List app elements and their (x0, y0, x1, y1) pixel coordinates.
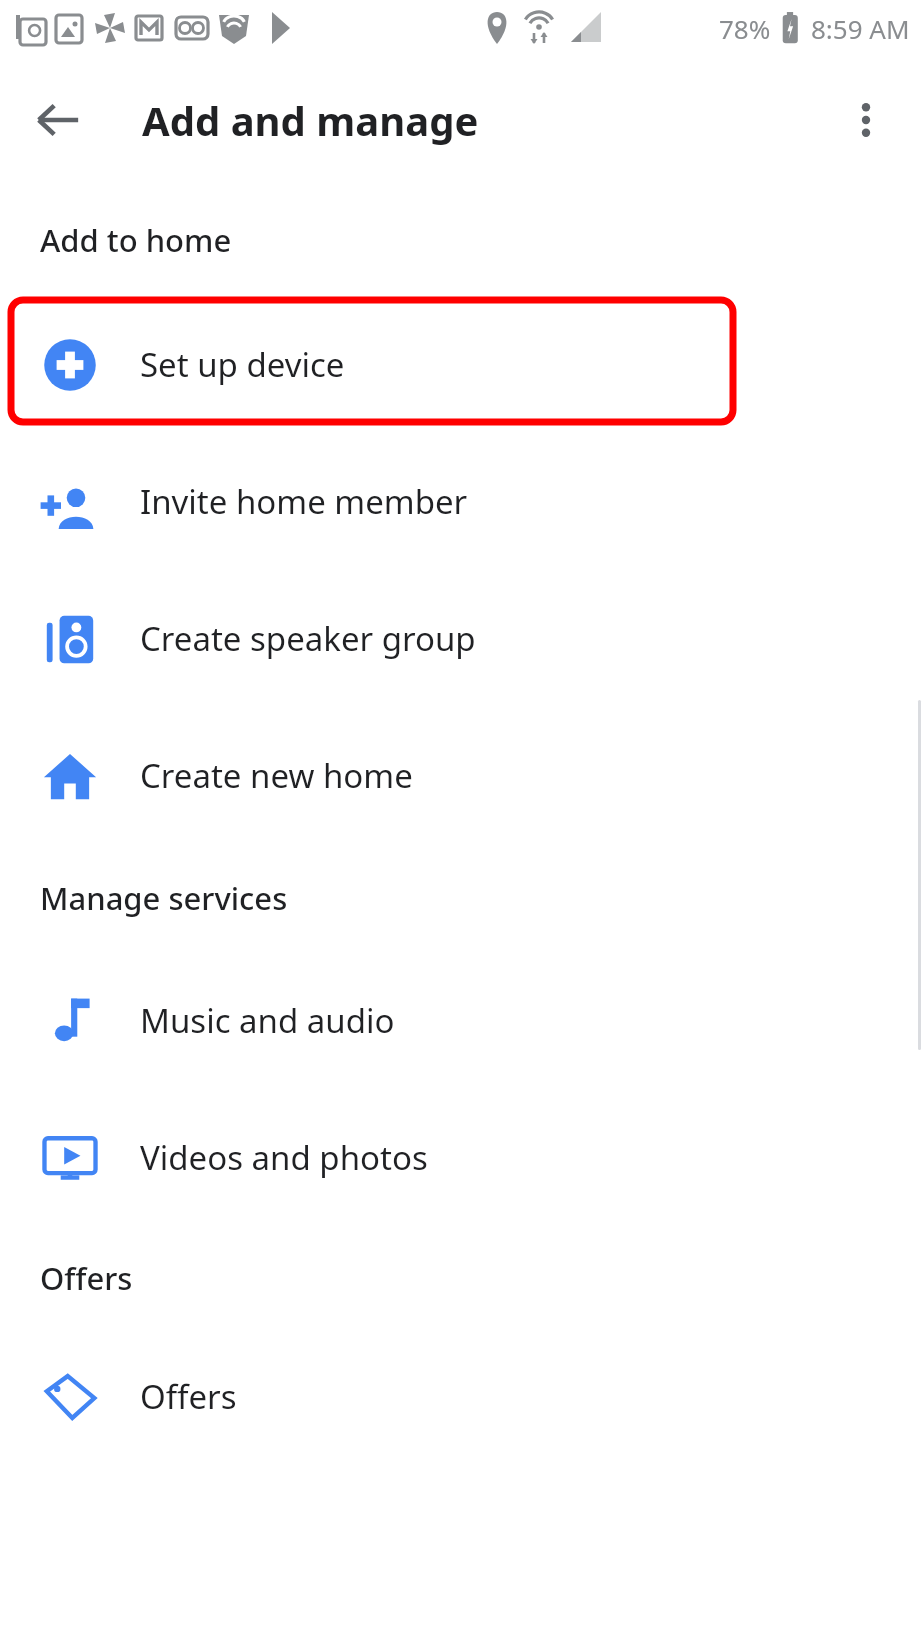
button[interactable]: Music and audio (0, 952, 924, 1089)
staticText: 78% (719, 11, 771, 46)
staticText: Videos and photos (140, 1135, 428, 1180)
staticText: Set up device (140, 342, 345, 387)
button[interactable]: Invite home member (0, 433, 924, 570)
staticText: Music and audio (140, 998, 395, 1043)
staticText: Create speaker group (140, 616, 476, 661)
staticText: 8:59 AM (811, 11, 910, 46)
staticText: Invite home member (140, 479, 468, 524)
button[interactable]: Create speaker group (0, 570, 924, 707)
button[interactable]: Offers (0, 1328, 924, 1465)
button[interactable]: Set up device (0, 296, 924, 433)
staticText: Offers (40, 1257, 133, 1299)
staticText: Add to home (40, 219, 232, 261)
button[interactable]: Videos and photos (0, 1089, 924, 1226)
staticText: Create new home (140, 753, 413, 798)
staticText: Add and manage (142, 93, 479, 147)
button[interactable]: Back (18, 80, 98, 160)
button[interactable]: More options (828, 82, 904, 158)
staticText: Manage services (40, 877, 288, 919)
staticText: Offers (140, 1374, 237, 1419)
button[interactable]: Create new home (0, 707, 924, 844)
